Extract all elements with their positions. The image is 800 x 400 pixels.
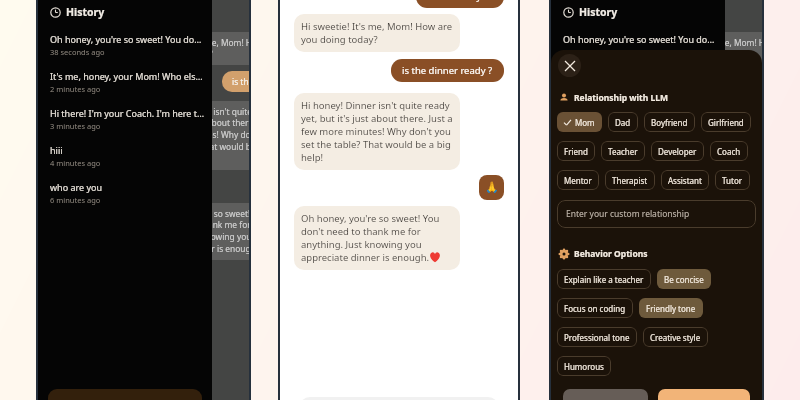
button[interactable]: hiii (38, 140, 212, 177)
staticText: hiii (50, 144, 63, 156)
staticText: Assistant (668, 175, 702, 186)
staticText: It's me, honey, your Mom! Who els… (563, 70, 716, 82)
staticText: Explain like a teacher (564, 274, 644, 285)
staticText: It's me, honey, your Mom! Who els… (50, 70, 203, 82)
staticText: Hi sweetie! It's me, Mom! How are you do… (145, 37, 249, 60)
button[interactable] (48, 389, 202, 400)
staticText: 38 seconds ago (50, 47, 105, 57)
staticText: Dad (615, 117, 631, 128)
button[interactable]: Oh honey, you're so sweet! You do… (551, 29, 725, 66)
button[interactable]: is the dinner ready ? (391, 59, 504, 82)
staticText: Oh honey, you're so sweet! You don't nee… (301, 212, 453, 264)
staticText: 4 minutes ago (563, 158, 614, 168)
staticText: Oh honey, you're so sweet! You do… (50, 33, 202, 45)
button[interactable]: Mom (557, 112, 602, 132)
button[interactable]: Oh honey, you're so sweet! You do… (38, 29, 212, 66)
button[interactable]: Hi there! I'm your Coach. I'm here t… (551, 103, 725, 140)
staticText: is the dinner ready ? (232, 76, 249, 87)
staticText: 🙏 (485, 181, 499, 194)
staticText: 6 minutes ago (563, 195, 614, 205)
staticText: Developer (658, 146, 697, 157)
button[interactable]: Hi there! I'm your Coach. I'm here t… (38, 103, 212, 140)
button[interactable]: Coach (710, 141, 748, 161)
button[interactable]: Hi honey! Dinner isn't quite ready yet, … (294, 93, 460, 170)
staticText: Oh honey, you're so sweet! You don't nee… (145, 208, 249, 255)
button[interactable]: Friend (557, 141, 595, 161)
button[interactable]: Teacher (601, 141, 645, 161)
button[interactable]: Explain like a teacher (557, 269, 651, 289)
staticText: Hi sweetie! It's me, Mom! How are you do… (658, 37, 762, 60)
button[interactable]: hiii (551, 140, 725, 177)
button[interactable]: Professional tone (557, 327, 637, 347)
button[interactable]: Friendly tone (639, 298, 703, 318)
staticText: 38 seconds ago (563, 47, 618, 57)
staticText: Be concise (664, 274, 704, 285)
staticText: Hi honey! Dinner isn't quite ready yet, … (658, 106, 762, 165)
staticText: Hi there! I'm your Coach. I'm here t… (50, 107, 205, 119)
staticText: Girlfriend (708, 117, 744, 128)
staticText: Behavior Options (574, 248, 648, 260)
button[interactable]: Dad (608, 112, 638, 132)
staticText: is the dinner ready ? (402, 64, 493, 77)
button[interactable]: Close (558, 54, 581, 77)
button[interactable]: hi who are you (416, 0, 504, 8)
button[interactable]: Pray (479, 175, 504, 200)
staticText: Hi honey! Dinner isn't quite ready yet, … (301, 99, 453, 164)
button[interactable]: Be concise (657, 269, 711, 289)
staticText: Oh honey, you're so sweet! You do… (563, 33, 715, 45)
button[interactable]: Boyfriend (644, 112, 695, 132)
staticText: Tutor (722, 175, 743, 186)
staticText: Focus on coding (564, 303, 626, 314)
button[interactable]: Girlfriend (701, 112, 751, 132)
button[interactable]: It's me, honey, your Mom! Who els… (38, 66, 212, 103)
staticText: Professional tone (564, 332, 630, 343)
button[interactable]: Humorous (557, 356, 611, 376)
staticText: 3 minutes ago (563, 121, 614, 131)
button[interactable]: Oh honey, you're so sweet! You don't nee… (294, 206, 460, 270)
staticText: Enter your custom relationship (566, 208, 690, 220)
button[interactable]: Developer (651, 141, 704, 161)
button[interactable]: who are you (38, 177, 212, 214)
button[interactable]: Message input (299, 397, 499, 400)
button[interactable]: Apply (658, 389, 750, 400)
button[interactable]: Tutor (715, 170, 750, 190)
staticText: hi who are you (427, 0, 493, 3)
staticText: Coach (717, 146, 741, 157)
staticText: History (66, 5, 105, 19)
staticText: Hi sweetie! It's me, Mom! How are you do… (301, 20, 453, 46)
staticText: 3 minutes ago (50, 121, 101, 131)
staticText: Hi there! I'm your Coach. I'm here t… (563, 107, 718, 119)
staticText: who are you (563, 181, 616, 193)
button[interactable]: Hi sweetie! It's me, Mom! How are you do… (294, 14, 460, 52)
staticText: Friendly tone (646, 303, 696, 314)
button[interactable]: Mentor (557, 170, 599, 190)
staticText: Mentor (564, 175, 592, 186)
staticText: Creative style (650, 332, 701, 343)
staticText: 2 minutes ago (50, 84, 101, 94)
button[interactable] (561, 389, 715, 400)
staticText: Relationship with LLM (574, 92, 669, 104)
staticText: 4 minutes ago (50, 158, 101, 168)
button[interactable]: who are you (551, 177, 725, 214)
staticText: Teacher (608, 146, 638, 157)
staticText: hiii (563, 144, 576, 156)
staticText: Humorous (564, 361, 604, 372)
button[interactable]: Therapist (605, 170, 655, 190)
staticText: who are you (50, 181, 103, 193)
staticText: 2 minutes ago (563, 84, 614, 94)
button[interactable]: Enter your custom relationship (557, 200, 756, 228)
staticText: History (579, 5, 618, 19)
staticText: 6 minutes ago (50, 195, 101, 205)
staticText: Boyfriend (651, 117, 688, 128)
button[interactable]: Creative style (643, 327, 708, 347)
button[interactable]: It's me, honey, your Mom! Who els… (551, 66, 725, 103)
staticText: Mom (575, 117, 595, 128)
button[interactable]: Cancel (563, 389, 648, 400)
button[interactable]: Focus on coding (557, 298, 633, 318)
button[interactable]: Assistant (661, 170, 709, 190)
staticText: Therapist (612, 175, 648, 186)
staticText: Oh honey, you're so sweet! You don't nee… (658, 208, 762, 255)
staticText: Friend (564, 146, 588, 157)
staticText: Hi honey! Dinner isn't quite ready yet, … (145, 106, 249, 165)
